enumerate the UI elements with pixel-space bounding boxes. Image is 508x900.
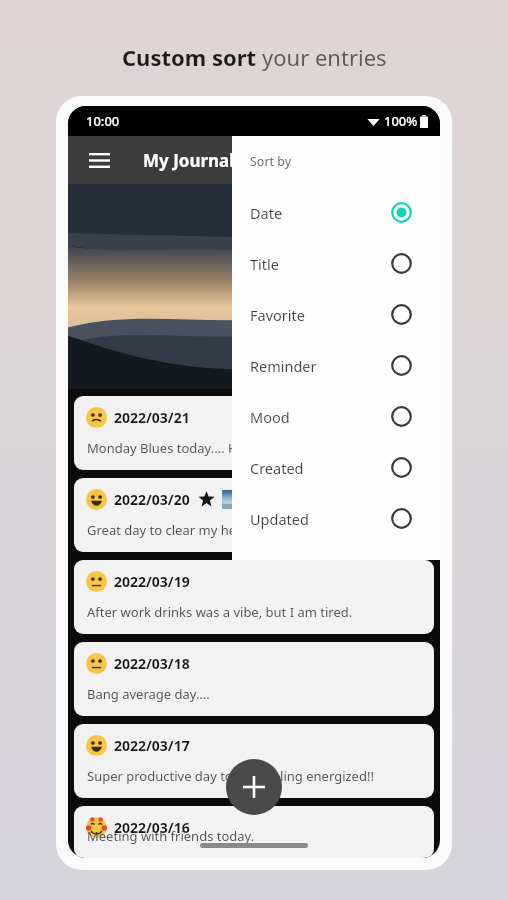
staticText: 100% <box>384 112 418 130</box>
staticText: Bang average day.... <box>87 685 210 703</box>
staticText: Title <box>250 254 279 274</box>
staticText: 2022/03/18 <box>114 654 190 673</box>
staticText: your entries <box>262 42 387 72</box>
staticText: 2022/03/19 <box>114 572 190 591</box>
staticText: Date <box>250 203 283 223</box>
button[interactable]: Date <box>232 187 440 238</box>
staticText: Mood <box>250 407 290 427</box>
staticText: Custom sort <box>122 42 262 72</box>
button[interactable]: 2022/03/19 <box>74 560 434 634</box>
staticText: Great day to clear my head at the beach <box>87 521 331 539</box>
staticText: After work drinks was a vibe, but I am t… <box>87 603 353 621</box>
button[interactable]: Open navigation menu <box>80 141 118 179</box>
button[interactable]: 2022/03/20 <box>74 478 434 552</box>
staticText: Super productive day today, feeling ener… <box>87 767 374 785</box>
staticText: Monday Blues today.... Had a rough one <box>87 439 331 457</box>
button[interactable]: 2022/03/17 <box>74 724 434 798</box>
staticText: My Journal <box>143 149 235 172</box>
staticText: Updated <box>250 509 309 529</box>
button[interactable]: Reminder <box>232 340 440 391</box>
button[interactable]: Created <box>232 442 440 493</box>
staticText: Created <box>250 458 304 478</box>
staticText: 2022/03/17 <box>114 736 190 755</box>
button[interactable]: Updated <box>232 493 440 544</box>
staticText: 2022/03/20 <box>114 490 190 509</box>
staticText: Sort by <box>250 153 292 170</box>
staticText: 10:00 <box>86 112 120 130</box>
staticText: 2022/03/16 <box>114 818 190 837</box>
button[interactable]: Mood <box>232 391 440 442</box>
staticText: 2022/03/21 <box>114 408 190 427</box>
staticText: Reminder <box>250 356 317 376</box>
staticText: Meeting with friends today. <box>87 827 255 845</box>
button[interactable]: 2022/03/21 <box>74 396 434 470</box>
button[interactable]: 2022/03/18 <box>74 642 434 716</box>
button[interactable]: 2022/03/16 <box>74 806 434 858</box>
button[interactable]: Favorite <box>232 289 440 340</box>
button[interactable]: Add new entry <box>226 759 282 815</box>
staticText: Favorite <box>250 305 305 325</box>
button[interactable]: Title <box>232 238 440 289</box>
